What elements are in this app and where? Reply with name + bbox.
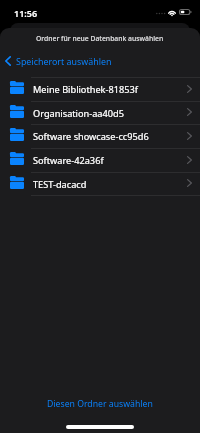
button[interactable]: Organisation-aa40d5 xyxy=(0,102,200,124)
staticText: TEST-dacacd xyxy=(33,178,87,191)
staticText: 11:56 xyxy=(14,7,38,19)
button[interactable]: TEST-dacacd xyxy=(0,173,200,195)
staticText: Software-42a36f xyxy=(33,154,104,167)
button[interactable]: Software showcase-cc95d6 xyxy=(0,125,200,148)
staticText: Speicherort auswählen xyxy=(16,55,112,67)
staticText: Diesen Ordner auswählen xyxy=(47,398,153,410)
button[interactable]: Diesen Ordner auswählen xyxy=(0,394,200,414)
button[interactable]: Speicherort auswählen xyxy=(0,53,200,69)
button[interactable]: Software-42a36f xyxy=(0,149,200,172)
staticText: Meine Bibliothek-81853f xyxy=(33,83,138,96)
button[interactable]: Meine Bibliothek-81853f xyxy=(0,78,200,101)
staticText: Organisation-aa40d5 xyxy=(33,107,124,120)
staticText: Ordner für neue Datenbank auswählen xyxy=(36,34,164,43)
staticText: Software showcase-cc95d6 xyxy=(33,130,149,143)
